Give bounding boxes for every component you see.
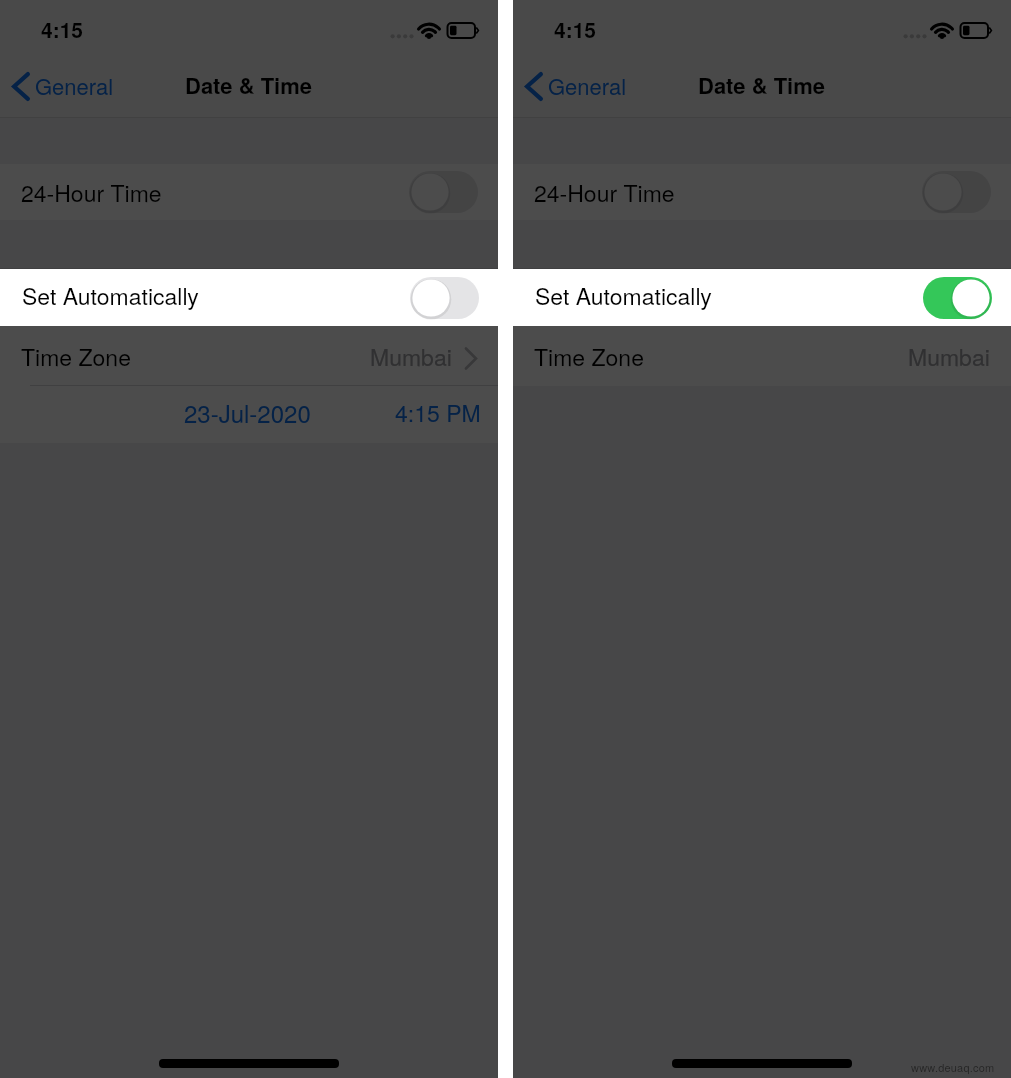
button[interactable]: 23-Jul-2020: [184, 395, 311, 429]
staticText: 4:15: [554, 14, 597, 44]
button[interactable]: 24-Hour Time: [513, 164, 1011, 220]
button[interactable]: Switch off: [410, 277, 479, 319]
staticText: 24-Hour Time: [21, 176, 162, 209]
staticText: www.deuaq.com: [911, 1059, 995, 1075]
button[interactable]: Set Automatically: [513, 269, 1011, 326]
button[interactable]: Time Zone: [513, 326, 1011, 386]
staticText: Time Zone: [534, 340, 644, 373]
staticText: General: [35, 70, 114, 102]
staticText: Time Zone: [21, 340, 131, 373]
button[interactable]: General: [0, 57, 114, 115]
button[interactable]: Switch off: [922, 171, 991, 213]
button[interactable]: General: [513, 57, 627, 115]
staticText: Date & Time: [185, 69, 313, 101]
button[interactable]: Time Zone: [0, 326, 498, 386]
staticText: Date & Time: [698, 69, 826, 101]
button[interactable]: 24-Hour Time: [0, 164, 498, 220]
staticText: 4:15: [41, 14, 84, 44]
button[interactable]: Set Automatically: [0, 269, 498, 326]
button[interactable]: Switch off: [409, 171, 478, 213]
staticText: Mumbai: [908, 340, 990, 373]
button[interactable]: Switch on: [923, 277, 992, 319]
staticText: General: [548, 70, 627, 102]
staticText: Set Automatically: [22, 279, 199, 312]
staticText: Set Automatically: [535, 279, 712, 312]
staticText: 24-Hour Time: [534, 176, 675, 209]
staticText: Mumbai: [370, 340, 452, 373]
button[interactable]: 4:15 PM: [395, 396, 481, 429]
